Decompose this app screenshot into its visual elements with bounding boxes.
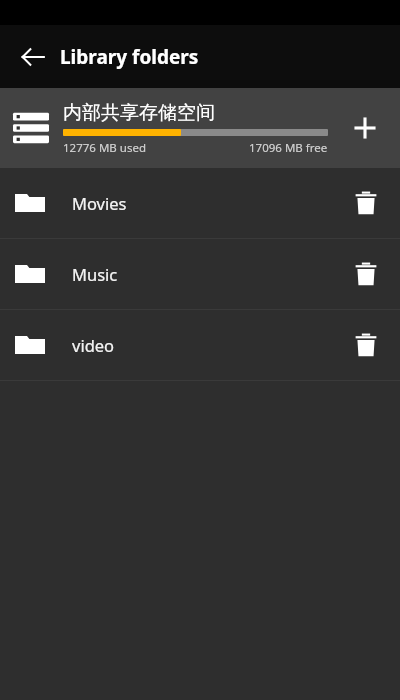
button[interactable]: Back: [12, 36, 54, 78]
button[interactable]: Delete video: [344, 323, 388, 367]
staticText: Music: [72, 263, 118, 285]
button[interactable]: video: [0, 310, 400, 380]
staticText: 12776 MB used: [63, 140, 146, 156]
button[interactable]: Delete Music: [344, 252, 388, 296]
staticText: Library folders: [60, 44, 199, 70]
staticText: Movies: [72, 192, 127, 214]
button[interactable]: Delete Movies: [344, 181, 388, 225]
button[interactable]: Music: [0, 239, 400, 309]
button[interactable]: Add folder: [342, 105, 388, 151]
button[interactable]: Movies: [0, 168, 400, 238]
button[interactable]: 内部共享存储空间: [0, 88, 400, 168]
staticText: 内部共享存储空间: [63, 101, 215, 125]
staticText: 17096 MB free: [249, 140, 328, 156]
staticText: video: [72, 334, 115, 356]
